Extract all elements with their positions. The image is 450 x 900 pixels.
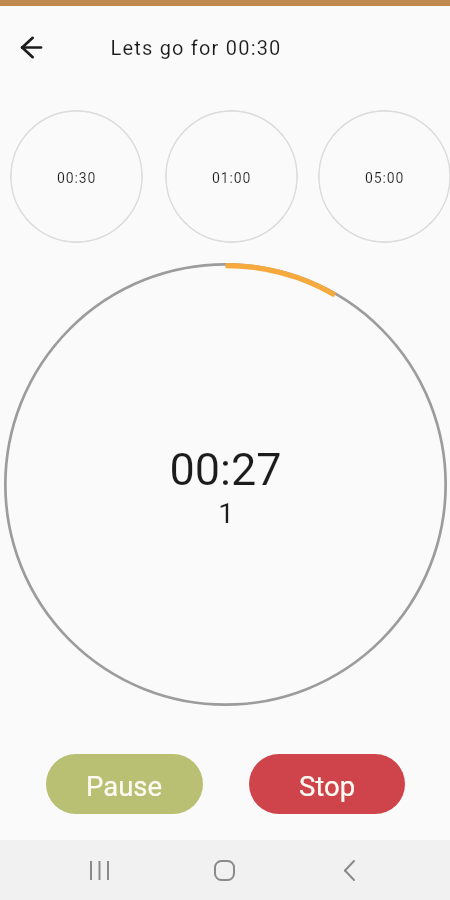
button[interactable]: Stop [249, 754, 405, 814]
staticText: Pause [86, 770, 163, 802]
button[interactable]: 01:00 [165, 110, 298, 243]
button[interactable]: Back [324, 855, 374, 885]
staticText: 05:00 [365, 170, 405, 186]
staticText: Lets go for 00:30 [110, 36, 282, 59]
button[interactable]: Back [10, 26, 52, 68]
button[interactable]: Pause [46, 754, 203, 814]
button[interactable]: 05:00 [318, 110, 450, 243]
staticText: 01:00 [212, 170, 252, 186]
staticText: 00:27 [169, 443, 282, 495]
staticText: 00:30 [57, 170, 97, 186]
staticText: 1 [218, 497, 234, 529]
staticText: Stop [299, 770, 356, 802]
button[interactable]: 00:30 [10, 110, 143, 243]
button[interactable]: Recent apps [74, 855, 124, 885]
button[interactable]: Home [199, 855, 249, 885]
